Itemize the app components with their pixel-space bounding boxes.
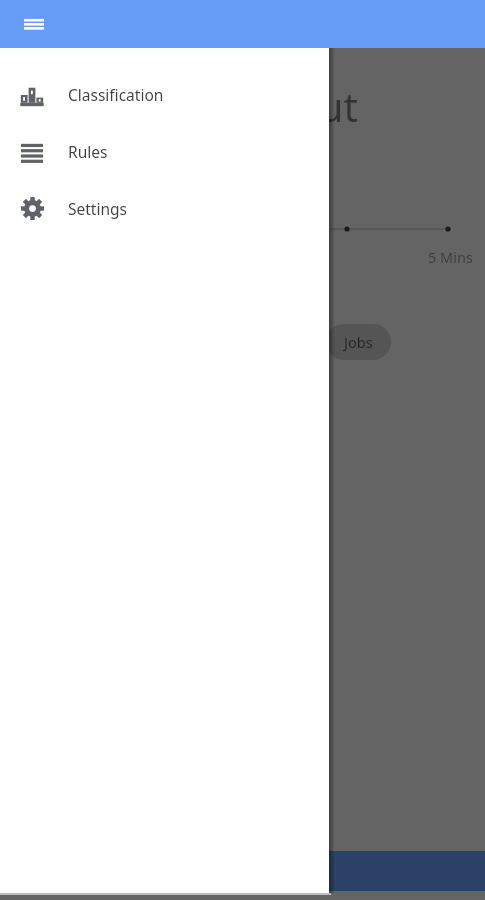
button[interactable]: Classification [0, 66, 329, 123]
staticText: Rules [68, 141, 108, 162]
staticText: Jobs [344, 332, 373, 352]
button[interactable]: Jobs [326, 324, 391, 360]
button[interactable]: Open navigation drawer [12, 3, 56, 47]
staticText: 5 Mins [428, 247, 473, 267]
button[interactable]: Rules [0, 123, 329, 180]
staticText: Workout [196, 79, 358, 133]
staticText: Settings [68, 198, 127, 219]
button[interactable]: Settings [0, 180, 329, 237]
staticText: Classification [68, 84, 164, 105]
